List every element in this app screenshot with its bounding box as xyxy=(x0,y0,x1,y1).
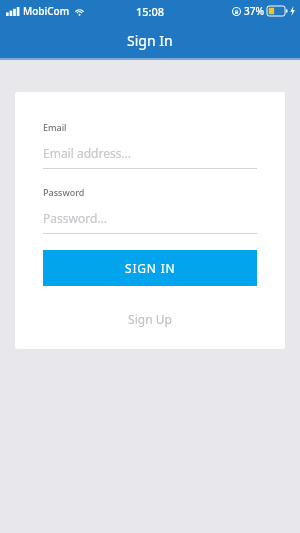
button[interactable]: Password xyxy=(43,186,257,234)
button[interactable]: Email xyxy=(43,121,257,169)
staticText: MobiCom xyxy=(23,4,70,18)
staticText: Email address... xyxy=(43,145,132,161)
staticText: Password xyxy=(43,186,85,198)
staticText: Email xyxy=(43,121,67,133)
staticText: Password... xyxy=(43,210,107,226)
staticText: 15:08 xyxy=(136,4,165,19)
button[interactable]: Sign Up xyxy=(43,308,257,330)
staticText: 37% xyxy=(244,4,264,18)
staticText: Sign Up xyxy=(128,311,172,327)
staticText: Sign In xyxy=(127,31,173,50)
staticText: SIGN IN xyxy=(125,260,176,276)
button[interactable]: SIGN IN xyxy=(43,250,257,286)
